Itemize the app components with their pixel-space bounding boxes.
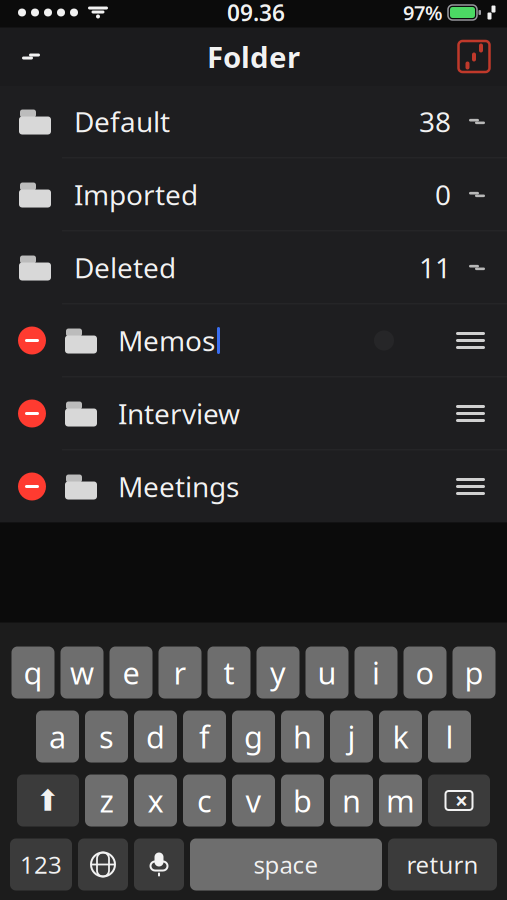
staticText: u — [317, 652, 336, 693]
button[interactable]: r — [158, 646, 201, 698]
button[interactable]: Delete Memos — [0, 304, 60, 376]
staticText: n — [342, 780, 361, 821]
button[interactable]: f — [183, 710, 226, 762]
button[interactable]: a — [36, 710, 79, 762]
staticText: d — [146, 716, 165, 757]
staticText: s — [99, 716, 114, 757]
button[interactable]: k — [379, 710, 422, 762]
staticText: 97% — [403, 0, 443, 26]
button[interactable]: 123 — [10, 838, 72, 890]
button[interactable]: Delete Interview — [0, 377, 60, 449]
staticText: c — [197, 780, 212, 821]
staticText: q — [23, 652, 42, 693]
button[interactable]: Back — [0, 27, 62, 85]
button[interactable]: j — [330, 710, 373, 762]
staticText: Interview — [118, 395, 240, 432]
staticText: r — [173, 652, 186, 693]
button[interactable]: t — [207, 646, 250, 698]
button[interactable]: Edit folders — [441, 27, 507, 85]
button[interactable]: i — [354, 646, 397, 698]
staticText: l — [445, 716, 453, 757]
button[interactable]: Shift — [17, 774, 79, 826]
staticText: i — [372, 652, 380, 693]
staticText: 0 — [435, 176, 451, 213]
button[interactable]: l — [428, 710, 471, 762]
staticText: z — [99, 780, 113, 821]
staticText: Folder — [207, 37, 300, 76]
button[interactable]: n — [330, 774, 373, 826]
button[interactable]: space — [190, 838, 382, 890]
staticText: 38 — [419, 103, 451, 140]
button[interactable]: Delete — [428, 774, 490, 826]
staticText: 11 — [419, 249, 451, 286]
staticText: Memos — [118, 322, 215, 359]
button[interactable]: o — [403, 646, 446, 698]
button[interactable]: Default — [0, 85, 507, 157]
staticText: b — [293, 780, 312, 821]
staticText: y — [270, 652, 286, 693]
button[interactable]: Next keyboard — [78, 838, 128, 890]
staticText: 123 — [20, 849, 62, 880]
button[interactable]: Reorder Interview — [456, 377, 507, 449]
button[interactable]: Delete Meetings — [0, 450, 60, 522]
button[interactable]: w — [60, 646, 103, 698]
button[interactable]: y — [256, 646, 299, 698]
staticText: Deleted — [74, 249, 176, 286]
button[interactable]: u — [305, 646, 348, 698]
button[interactable]: m — [379, 774, 422, 826]
staticText: v — [245, 780, 261, 821]
button[interactable]: z — [85, 774, 128, 826]
staticText: o — [415, 652, 434, 693]
staticText: × — [455, 785, 468, 815]
button[interactable]: Deleted — [0, 231, 507, 303]
staticText: p — [464, 652, 483, 693]
button[interactable]: Reorder Meetings — [456, 450, 507, 522]
button[interactable]: x — [134, 774, 177, 826]
staticText: m — [386, 780, 415, 821]
button[interactable]: b — [281, 774, 324, 826]
staticText: x — [147, 780, 163, 821]
staticText: e — [122, 652, 139, 693]
button[interactable]: v — [232, 774, 275, 826]
button[interactable]: p — [452, 646, 495, 698]
staticText: return — [406, 849, 478, 880]
staticText: h — [293, 716, 312, 757]
button[interactable]: d — [134, 710, 177, 762]
button[interactable]: Reorder Memos — [456, 304, 507, 376]
staticText: f — [199, 716, 210, 757]
button[interactable]: h — [281, 710, 324, 762]
button[interactable]: e — [109, 646, 152, 698]
staticText: Meetings — [118, 468, 239, 505]
staticText: g — [244, 716, 263, 757]
staticText: k — [392, 716, 408, 757]
staticText: j — [347, 716, 355, 757]
staticText: a — [49, 716, 66, 757]
staticText: ⬆ — [35, 784, 60, 817]
staticText: w — [70, 652, 94, 693]
button[interactable]: g — [232, 710, 275, 762]
button[interactable]: Dictation — [134, 838, 184, 890]
staticText: t — [223, 652, 234, 693]
button[interactable]: Imported — [0, 158, 507, 230]
button[interactable]: c — [183, 774, 226, 826]
staticText: Default — [74, 103, 170, 140]
staticText: 09.36 — [227, 0, 285, 27]
staticText: Imported — [74, 176, 198, 213]
staticText: space — [253, 849, 318, 880]
button[interactable]: s — [85, 710, 128, 762]
button[interactable]: return — [388, 838, 497, 890]
button[interactable]: q — [11, 646, 54, 698]
